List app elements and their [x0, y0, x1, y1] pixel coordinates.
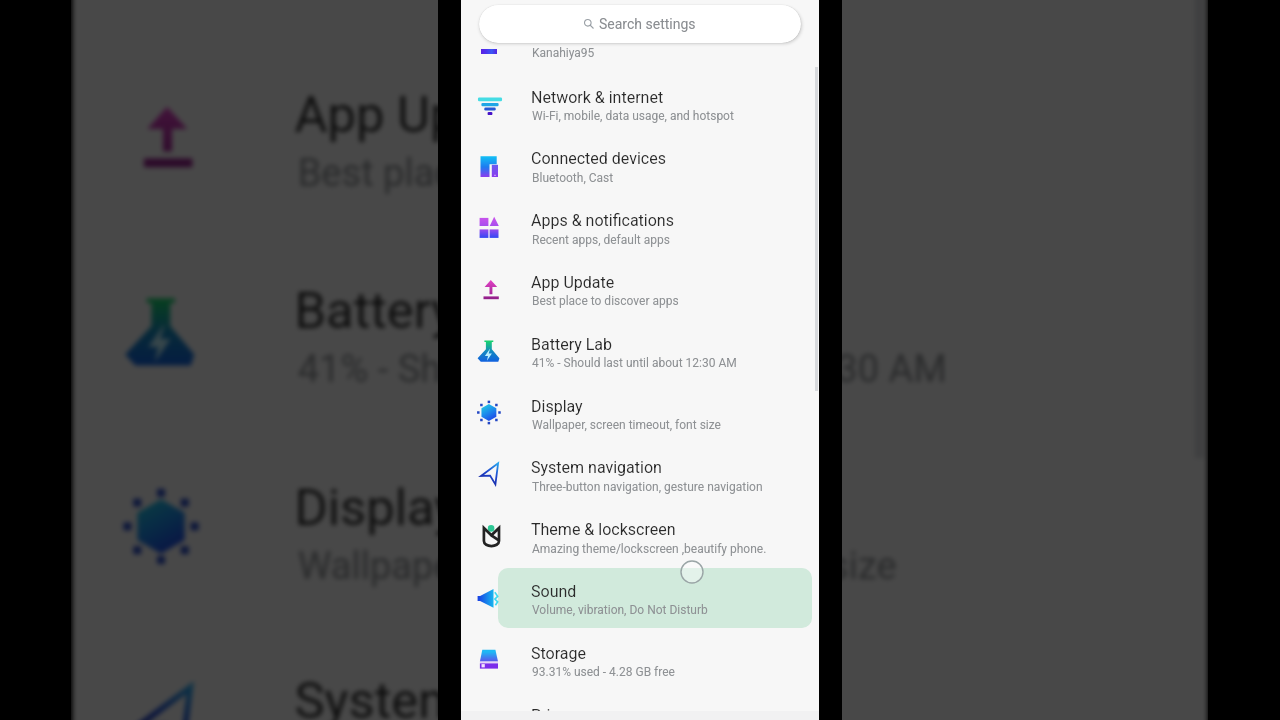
button[interactable]: Search settings — [479, 5, 801, 43]
staticText: Display — [294, 477, 459, 537]
staticText: App Update — [531, 273, 615, 292]
staticText: 93.31% used - 4.28 GB free — [532, 665, 675, 679]
button[interactable] — [461, 507, 819, 569]
staticText: App Update — [294, 84, 561, 144]
button[interactable] — [461, 259, 819, 321]
staticText: Kanahiya95 — [532, 46, 595, 60]
staticText: Battery Lab — [531, 335, 613, 354]
staticText: Three-button navigation, gesture navigat… — [532, 480, 763, 494]
staticText: Volume, vibration, Do Not Disturb — [532, 603, 708, 617]
button[interactable] — [461, 198, 819, 260]
staticText: Sound — [531, 582, 577, 601]
staticText: Storage — [531, 644, 586, 663]
staticText: Battery Lab — [294, 281, 554, 341]
staticText: Wallpaper, screen timeout, font size — [298, 544, 897, 588]
button[interactable] — [461, 383, 819, 445]
staticText: Wi-Fi, mobile, data usage, and hotspot — [532, 109, 734, 123]
button[interactable] — [73, 0, 1207, 43]
button[interactable] — [461, 445, 819, 507]
button[interactable] — [73, 40, 1207, 236]
staticText: Best place to discover apps — [298, 151, 764, 195]
staticText: System navigation — [531, 458, 662, 477]
staticText: Wallpaper, screen timeout, font size — [532, 418, 721, 432]
button[interactable] — [461, 74, 819, 136]
staticText: 41% - Should last until about 12:30 AM — [532, 356, 737, 370]
button[interactable] — [461, 36, 819, 64]
staticText: Recent apps, default apps — [532, 233, 670, 247]
button[interactable] — [73, 236, 1207, 433]
staticText: System navigation — [294, 671, 710, 720]
button[interactable] — [73, 433, 1207, 629]
button[interactable] — [461, 136, 819, 198]
staticText: Connected devices — [531, 149, 666, 168]
staticText: 41% - Should last until about 12:30 AM — [298, 347, 947, 392]
staticText: Recent apps, default apps — [298, 0, 735, 2]
button[interactable] — [73, 629, 1207, 720]
staticText: Bluetooth, Cast — [532, 171, 614, 185]
staticText: Theme & lockscreen — [531, 520, 676, 539]
staticText: Apps & notifications — [531, 211, 674, 230]
staticText: Search settings — [599, 16, 696, 32]
staticText: Display — [531, 397, 583, 416]
button[interactable] — [461, 568, 819, 630]
button[interactable] — [461, 630, 819, 692]
staticText: Privacy — [531, 706, 583, 720]
staticText: Amazing theme/lockscreen ,beautify phone… — [532, 542, 767, 556]
staticText: Network & internet — [531, 88, 664, 107]
staticText: Best place to discover apps — [532, 294, 679, 308]
button[interactable] — [461, 321, 819, 383]
